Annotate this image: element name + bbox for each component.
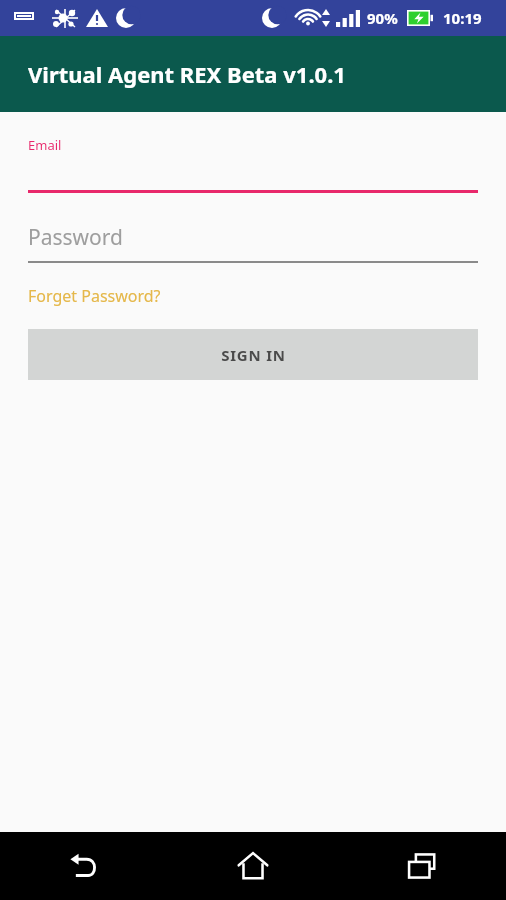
staticText: Virtual Agent REX Beta v1.0.1 [28,59,346,89]
button[interactable]: Recent apps [337,832,506,900]
staticText: Password [28,223,123,252]
button[interactable]: Back [0,832,168,900]
staticText: Email [28,136,62,154]
staticText: SIGN IN [221,345,286,365]
button[interactable]: Password [28,193,478,263]
button[interactable]: Forget Password? [28,285,161,307]
button[interactable]: Home [168,832,337,900]
button[interactable]: SIGN IN [28,329,478,380]
staticText: 90% [367,8,398,28]
staticText: Forget Password? [28,285,161,307]
staticText: 10:19 [443,8,482,28]
button[interactable]: Email [28,112,478,193]
